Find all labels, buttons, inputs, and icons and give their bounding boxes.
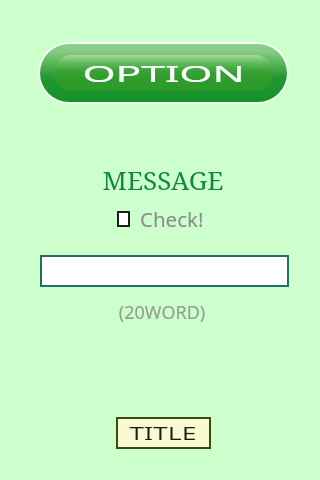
staticText: (20WORD)	[2, 300, 320, 325]
staticText: TITLE	[129, 421, 198, 445]
button[interactable]	[40, 255, 289, 287]
button[interactable]: TITLE	[116, 417, 211, 449]
button[interactable]: OPTION	[40, 44, 287, 102]
staticText: MESSAGE	[3, 162, 320, 197]
staticText: OPTION	[82, 58, 246, 88]
staticText: Check!	[140, 205, 204, 233]
button[interactable]: Check!	[0, 205, 320, 233]
